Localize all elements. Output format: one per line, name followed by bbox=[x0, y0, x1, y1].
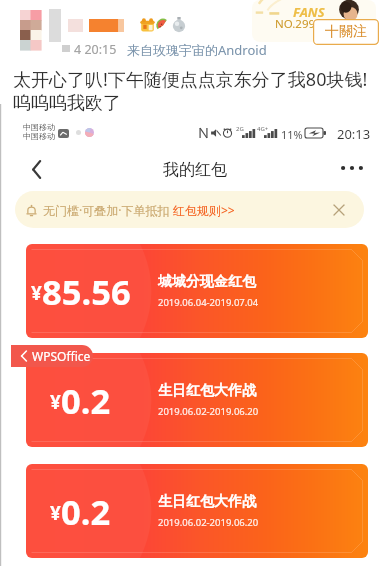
staticText: 2019.06.02-2019.06.20 bbox=[158, 516, 259, 529]
staticText: 2019.06.04-2019.07.04 bbox=[158, 296, 259, 309]
button[interactable]: Back bbox=[17, 151, 57, 187]
staticText: ¥ bbox=[31, 280, 42, 306]
staticText: 呜呜呜我欧了 bbox=[13, 92, 121, 115]
staticText: FANS bbox=[293, 3, 325, 21]
staticText: 我的红包 bbox=[163, 160, 227, 180]
staticText: 0.2 bbox=[61, 488, 111, 535]
staticText: 红包规则>> bbox=[173, 202, 235, 218]
staticText: NO.2995 bbox=[275, 16, 322, 32]
staticText: 中国移动 bbox=[23, 122, 55, 132]
staticText: WPSOffice bbox=[32, 348, 91, 364]
staticText: 生日红包大作战 bbox=[158, 493, 256, 511]
staticText: 来自玫瑰宇宙的Android bbox=[127, 41, 267, 59]
staticText: 4 20:15 bbox=[74, 41, 117, 58]
staticText: 中国移动 bbox=[23, 131, 55, 141]
staticText: 十關注 bbox=[325, 23, 367, 41]
staticText: ¥ bbox=[50, 389, 61, 415]
button[interactable]: More options bbox=[334, 152, 370, 184]
button[interactable]: 十關注 bbox=[313, 19, 379, 45]
button[interactable]: ¥ bbox=[26, 244, 368, 338]
button[interactable]: Close banner bbox=[328, 199, 350, 221]
staticText: 11% bbox=[281, 127, 303, 142]
button[interactable]: ¥ bbox=[26, 464, 368, 558]
staticText: 0.2 bbox=[61, 377, 111, 424]
staticText: 20:13 bbox=[337, 125, 371, 143]
staticText: 城城分现金红包 bbox=[158, 273, 256, 291]
staticText: ¥ bbox=[50, 500, 61, 526]
staticText: 生日红包大作战 bbox=[158, 382, 256, 400]
button[interactable]: WPSOffice bbox=[11, 345, 93, 367]
button[interactable]: ¥ bbox=[26, 353, 368, 447]
staticText: 无门槛·可叠加·下单抵扣 bbox=[43, 202, 173, 218]
staticText: 85.56 bbox=[42, 268, 131, 315]
staticText: 太开心了叭!下午随便点点京东分了我80块钱! bbox=[13, 67, 368, 92]
staticText: 2019.06.02-2019.06.20 bbox=[158, 405, 259, 418]
staticText: 4G+ bbox=[257, 125, 269, 133]
staticText: 2G bbox=[236, 125, 244, 133]
